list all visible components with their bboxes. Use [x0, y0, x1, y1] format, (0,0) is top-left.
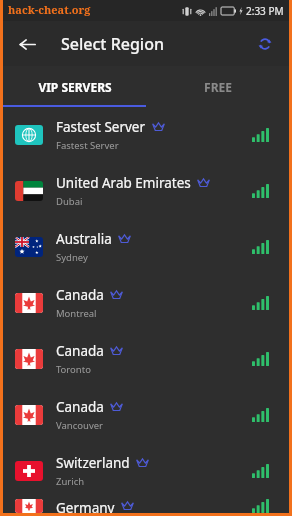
staticText: United Arab Emirates — [56, 174, 191, 192]
staticText: Sydney — [56, 251, 88, 264]
staticText: hack-cheat.org — [8, 2, 91, 17]
staticText: Canada — [56, 342, 104, 360]
staticText: Toronto — [56, 363, 91, 376]
staticText: Switzerland — [56, 454, 130, 472]
staticText: FREE — [204, 79, 232, 95]
staticText: Australia — [56, 230, 112, 248]
button[interactable]: Canada — [3, 331, 289, 387]
button[interactable]: FREE — [146, 66, 289, 107]
button[interactable]: Fastest Server — [3, 107, 289, 163]
button[interactable]: Australia — [3, 219, 289, 275]
staticText: Fastest Server — [56, 139, 119, 152]
staticText: 2:33 PM — [246, 4, 284, 18]
button[interactable]: Refresh — [249, 28, 281, 60]
staticText: Canada — [56, 398, 104, 416]
staticText: Fastest Server — [56, 118, 146, 136]
staticText: Montreal — [56, 307, 97, 320]
button[interactable]: Back — [11, 28, 43, 60]
button[interactable]: United Arab Emirates — [3, 163, 289, 219]
staticText: Vancouver — [56, 419, 103, 432]
staticText: Dubai — [56, 195, 83, 208]
staticText: VIP SERVERS — [38, 79, 112, 95]
button[interactable]: Canada — [3, 275, 289, 331]
staticText: Select Region — [61, 33, 164, 55]
button[interactable]: Germany — [3, 499, 289, 513]
button[interactable]: Switzerland — [3, 443, 289, 499]
staticText: Germany — [56, 499, 115, 513]
button[interactable]: Canada — [3, 387, 289, 443]
staticText: Canada — [56, 286, 104, 304]
button[interactable]: VIP SERVERS — [3, 66, 146, 107]
staticText: Zurich — [56, 475, 85, 488]
